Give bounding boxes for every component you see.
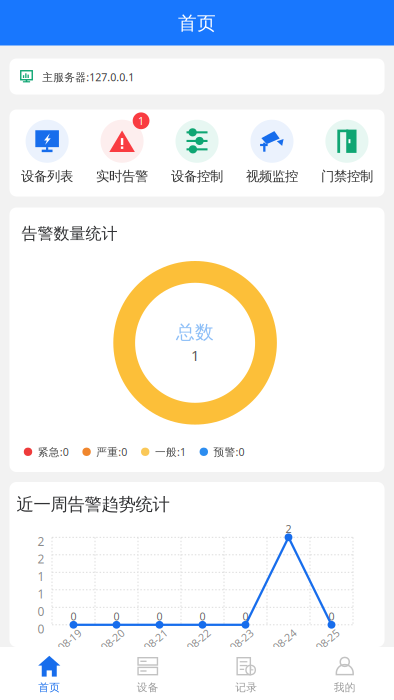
staticText: 08-23	[228, 633, 255, 647]
button[interactable]: 设备控制	[159, 109, 234, 196]
staticText: 我的	[334, 681, 356, 694]
staticText: 视频监控	[246, 168, 298, 184]
staticText: 1	[37, 568, 44, 584]
staticText: 一般:1	[155, 445, 186, 459]
staticText: 设备	[137, 681, 159, 694]
staticText: 0	[113, 609, 119, 623]
staticText: 08-22	[185, 633, 212, 647]
staticText: 设备列表	[21, 168, 73, 184]
staticText: 告警数量统计	[21, 224, 117, 243]
staticText: 0	[199, 609, 205, 623]
staticText: 08-21	[142, 633, 169, 647]
button[interactable]: 设备	[98, 647, 197, 700]
staticText: 1	[37, 586, 44, 602]
staticText: 设备控制	[171, 168, 223, 184]
staticText: 08-25	[314, 633, 341, 647]
button[interactable]: 视频监控	[234, 109, 309, 196]
staticText: 实时告警	[96, 168, 148, 184]
button[interactable]: 我的	[295, 647, 394, 700]
staticText: 2	[285, 522, 291, 536]
staticText: 紧急:0	[38, 445, 69, 459]
button[interactable]: 门禁控制	[309, 109, 384, 196]
staticText: 0	[37, 603, 44, 619]
staticText: 1	[191, 345, 199, 365]
staticText: 08-20	[99, 633, 126, 647]
staticText: 记录	[235, 681, 257, 694]
staticText: 近一周告警趋势统计	[17, 494, 170, 515]
staticText: 08-24	[271, 633, 298, 647]
staticText: 0	[70, 609, 76, 623]
button[interactable]: 首页	[0, 647, 98, 700]
staticText: 1	[138, 114, 144, 128]
staticText: 主服务器:127.0.0.1	[42, 70, 134, 84]
staticText: 0	[328, 609, 334, 623]
button[interactable]: 设备列表	[10, 109, 85, 196]
staticText: 0	[156, 609, 162, 623]
staticText: 2	[37, 551, 44, 567]
staticText: 2	[37, 533, 44, 549]
staticText: 严重:0	[96, 445, 127, 459]
staticText: 门禁控制	[321, 168, 373, 184]
staticText: 0	[242, 609, 248, 623]
staticText: 0	[37, 621, 44, 637]
staticText: 首页	[178, 12, 216, 35]
button[interactable]: 1	[85, 109, 160, 196]
button[interactable]: 记录	[197, 647, 295, 700]
staticText: 首页	[38, 681, 60, 694]
staticText: 预警:0	[213, 445, 244, 459]
staticText: 总数	[176, 321, 214, 344]
button[interactable]: 主服务器:127.0.0.1	[9, 58, 384, 94]
staticText: 08-19	[56, 633, 83, 647]
